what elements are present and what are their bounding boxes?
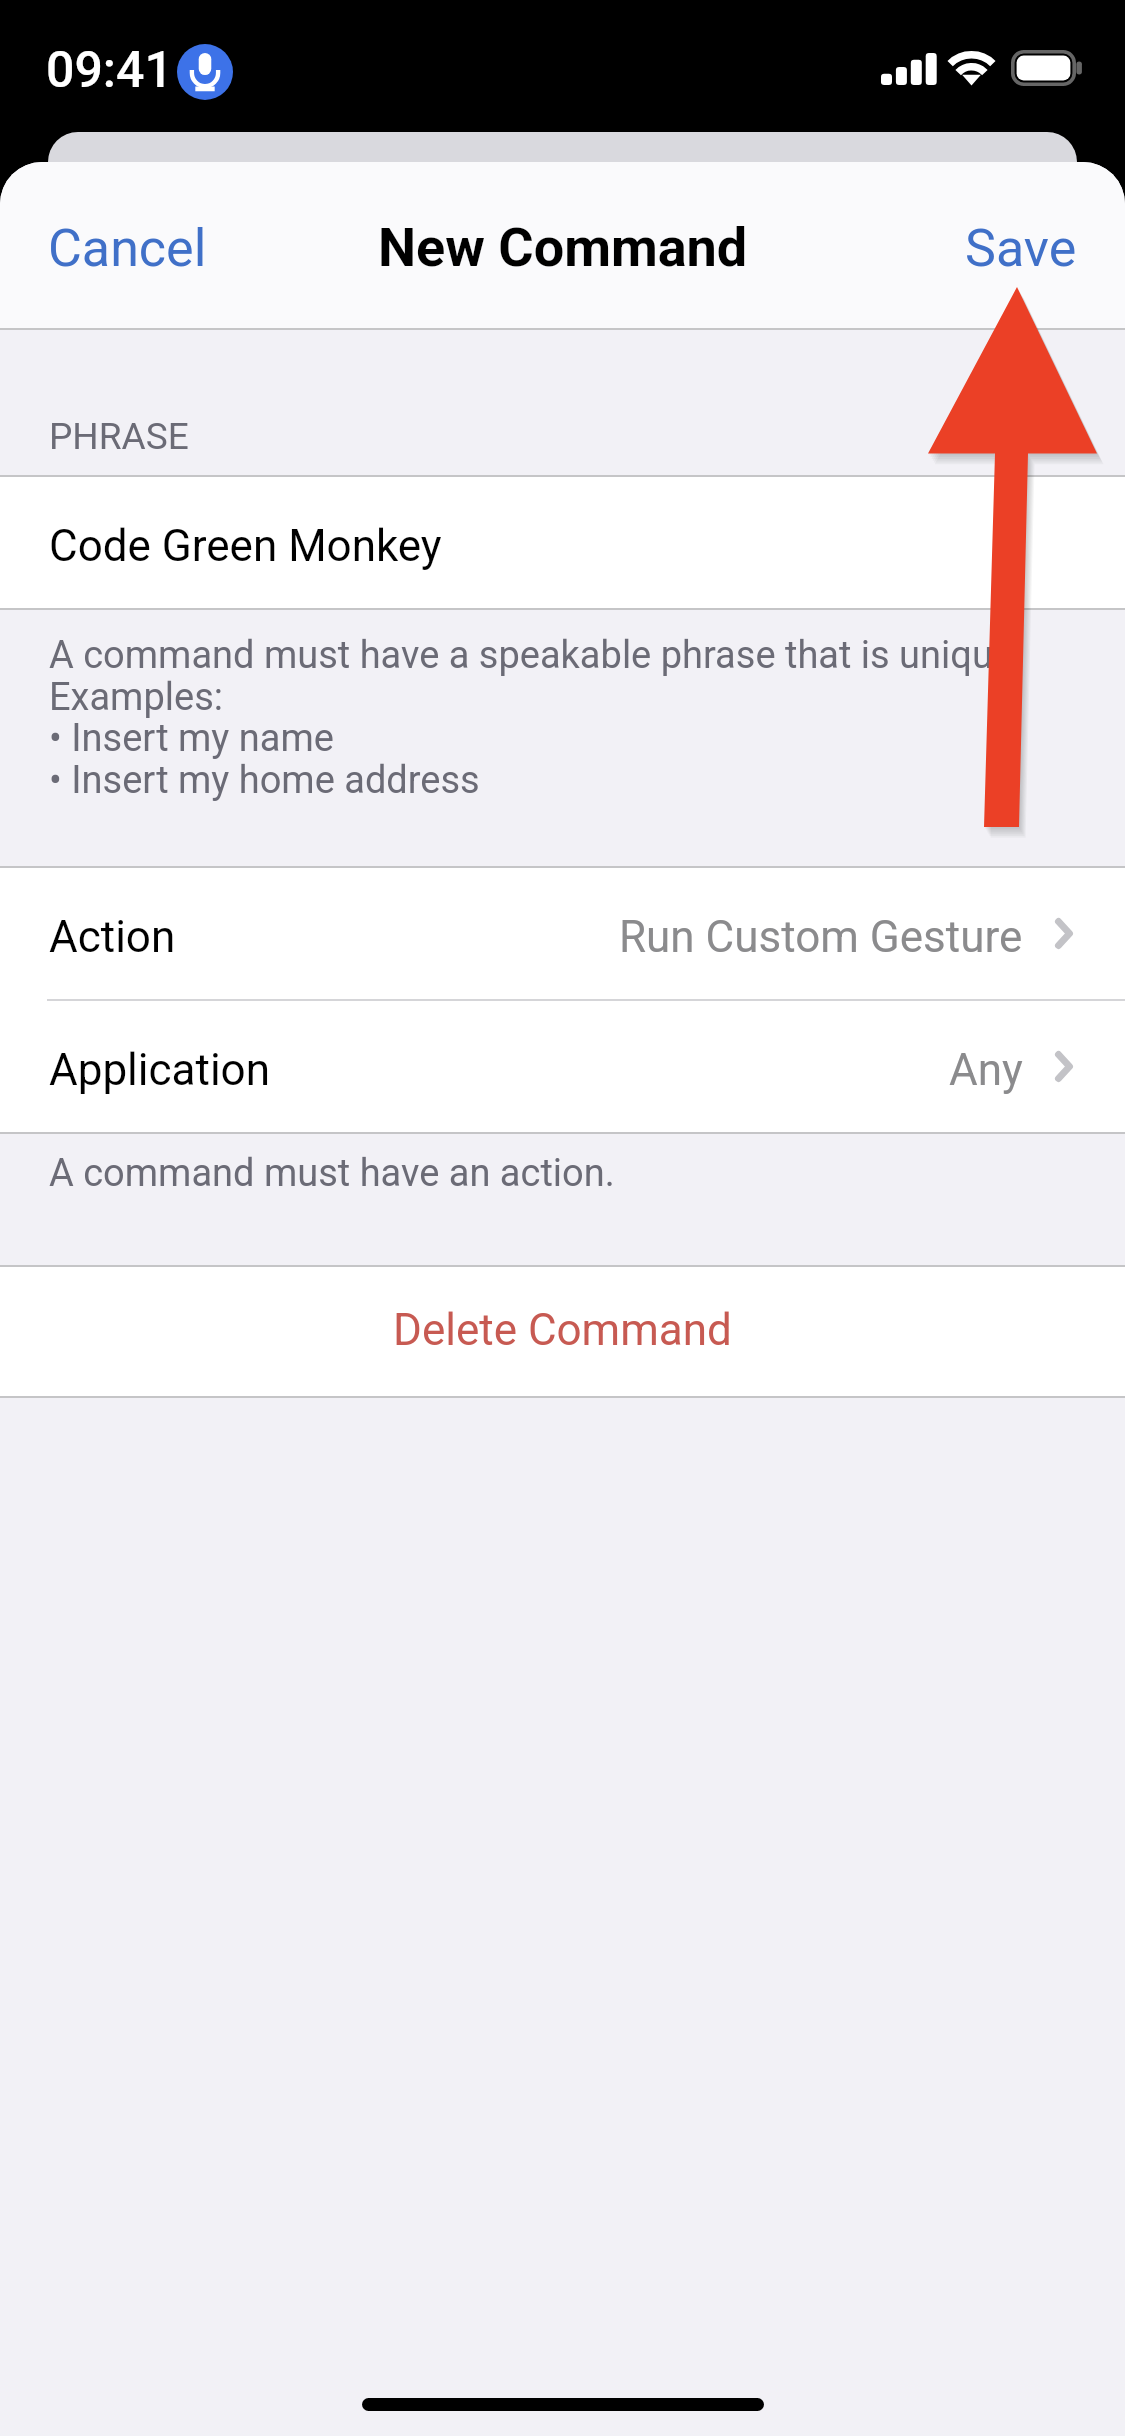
staticText: Save xyxy=(965,218,1077,279)
staticText: Delete Command xyxy=(393,1304,732,1356)
staticText: Examples: xyxy=(49,675,223,720)
staticText: • Insert my name xyxy=(49,716,334,761)
button[interactable]: Action xyxy=(0,868,1125,999)
staticText: PHRASE xyxy=(49,415,189,458)
other: Wi-Fi xyxy=(948,51,995,85)
button[interactable]: Application xyxy=(0,1001,1125,1132)
staticText: Run Custom Gesture xyxy=(619,911,1023,963)
staticText: A command must have a speakable phrase t… xyxy=(49,633,1024,678)
other: Cellular signal xyxy=(881,53,934,85)
staticText: Code Green Monkey xyxy=(49,520,442,572)
staticText: 09:41 xyxy=(46,41,173,100)
staticText: Application xyxy=(49,1044,270,1096)
button[interactable]: Code Green Monkey xyxy=(0,477,1125,608)
staticText: Any xyxy=(949,1044,1023,1096)
other: Voice Control active xyxy=(177,44,233,100)
button[interactable]: Save xyxy=(917,174,1125,319)
button[interactable]: Delete Command xyxy=(0,1267,1125,1396)
staticText: New Command xyxy=(378,216,748,279)
other: Battery full xyxy=(1011,50,1083,86)
staticText: Cancel xyxy=(48,218,207,279)
staticText: • Insert my home address xyxy=(49,758,480,803)
staticText: A command must have an action. xyxy=(49,1151,615,1196)
staticText: Action xyxy=(49,911,176,963)
button[interactable]: Cancel xyxy=(0,174,255,319)
